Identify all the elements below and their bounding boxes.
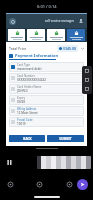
button[interactable]: Card Number — [11, 74, 82, 82]
button[interactable]: Expiry — [11, 96, 82, 104]
button[interactable]: Payment Information — [9, 53, 84, 58]
staticText: JOHN D — [17, 89, 28, 93]
staticText: Card Number — [17, 74, 35, 78]
staticText: self service manager — [45, 19, 75, 23]
button[interactable]: Pause — [5, 158, 14, 167]
staticText: SUBMIT — [59, 137, 72, 141]
button[interactable] — [67, 29, 85, 41]
staticText: Card Type — [17, 63, 31, 67]
button[interactable]: Settings — [5, 179, 15, 189]
button[interactable]: Logo — [9, 18, 16, 25]
button[interactable] — [27, 29, 45, 41]
staticText: Payment Information — [15, 53, 59, 58]
button[interactable]: Card Type — [11, 63, 82, 71]
button[interactable]: BACK — [9, 135, 45, 142]
staticText: 10019 — [17, 122, 26, 126]
staticText: 09/28 — [17, 100, 26, 104]
button[interactable] — [47, 29, 65, 41]
button[interactable]: SUBMIT — [47, 135, 84, 142]
staticText: BACK — [23, 137, 32, 141]
staticText: Postal Code — [17, 118, 33, 122]
button[interactable] — [8, 29, 25, 41]
staticText: 0:01 / 0:14 — [37, 4, 57, 9]
button[interactable]: Effects — [64, 179, 74, 189]
button[interactable]: Expand — [80, 46, 84, 50]
button[interactable]: Postal Code — [11, 118, 82, 126]
button[interactable]: Logo — [6, 14, 87, 28]
staticText: Total Price — [9, 46, 27, 51]
button[interactable]: Account — [78, 18, 84, 24]
button[interactable]: Export — [77, 179, 88, 190]
button[interactable]: Billing Address — [11, 107, 82, 115]
button[interactable] — [37, 156, 91, 169]
button[interactable]: Layers — [84, 86, 90, 92]
staticText: 12 Main Street — [17, 111, 38, 115]
staticText: XXXXXXXXXXXX4242 — [17, 78, 46, 82]
button[interactable]: Crop — [84, 68, 90, 74]
staticText: Expiry — [17, 96, 26, 100]
staticText: Card Holder Name — [17, 85, 42, 89]
button[interactable]: Card Holder Name — [11, 85, 82, 93]
staticText: $345.00 — [63, 46, 76, 51]
button[interactable]: Total Price — [9, 44, 84, 52]
button[interactable]: Audio — [34, 179, 44, 189]
staticText: Billing Address — [17, 107, 37, 111]
button[interactable]: Rotate — [84, 77, 90, 83]
staticText: mastercard debit — [17, 67, 42, 71]
